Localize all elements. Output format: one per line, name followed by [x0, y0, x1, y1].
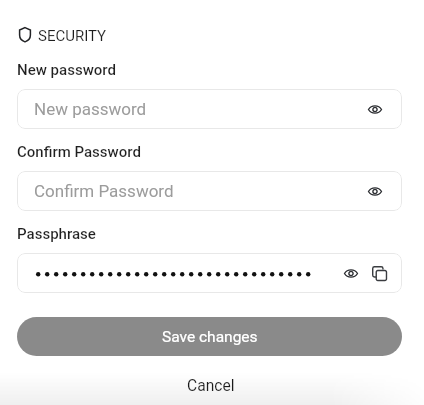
staticText: New password	[17, 61, 116, 79]
button[interactable]: Show password	[337, 259, 365, 287]
button[interactable]: Show password	[361, 177, 389, 205]
button[interactable]: Save changes	[17, 317, 402, 356]
staticText: Cancel	[187, 377, 235, 395]
button[interactable]: Cancel	[164, 370, 260, 400]
staticText: SECURITY	[38, 27, 107, 45]
staticText: Save changes	[162, 328, 258, 346]
button[interactable]: New password	[17, 89, 402, 129]
staticText: Passphrase	[17, 225, 96, 243]
button[interactable]: Show password	[361, 95, 389, 123]
staticText: New password	[34, 99, 147, 119]
button[interactable]: Show password	[17, 253, 402, 293]
staticText: Confirm Password	[34, 181, 174, 201]
button[interactable]: Confirm Password	[17, 171, 402, 211]
button[interactable]: Copy passphrase	[365, 259, 393, 287]
staticText: Confirm Password	[17, 143, 141, 161]
